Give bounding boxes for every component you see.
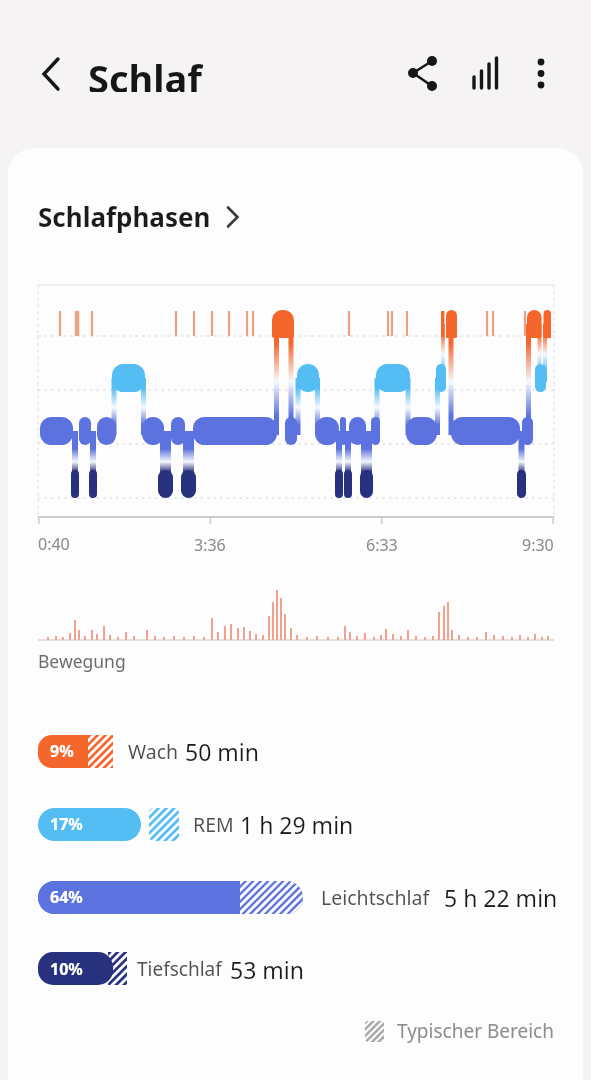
staticText: 53 min [230, 954, 304, 985]
staticText: 5 h 22 min [444, 882, 558, 913]
staticText: 10% [50, 958, 83, 980]
staticText: 0:40 [38, 533, 70, 555]
staticText: 64% [50, 886, 83, 908]
staticText: 17% [50, 813, 83, 835]
staticText: Wach [128, 738, 179, 765]
staticText: 50 min [185, 736, 259, 767]
staticText: 9% [50, 740, 74, 762]
button[interactable] [464, 51, 508, 95]
staticText: Bewegung [38, 649, 126, 673]
staticText: 1 h 29 min [240, 809, 354, 840]
staticText: Tiefschlaf [137, 956, 222, 982]
staticText: 6:33 [366, 534, 398, 556]
button[interactable] [520, 51, 562, 95]
staticText: Schlafphasen [38, 199, 211, 234]
button[interactable] [30, 190, 246, 244]
button[interactable] [28, 48, 72, 100]
staticText: Leichtschlaf [321, 884, 430, 911]
staticText: REM [193, 811, 234, 838]
staticText: 3:36 [194, 534, 226, 556]
staticText: Typischer Bereich [397, 1018, 554, 1044]
staticText: 9:30 [522, 534, 554, 556]
button[interactable] [402, 51, 446, 95]
staticText: Schlaf [88, 52, 203, 92]
